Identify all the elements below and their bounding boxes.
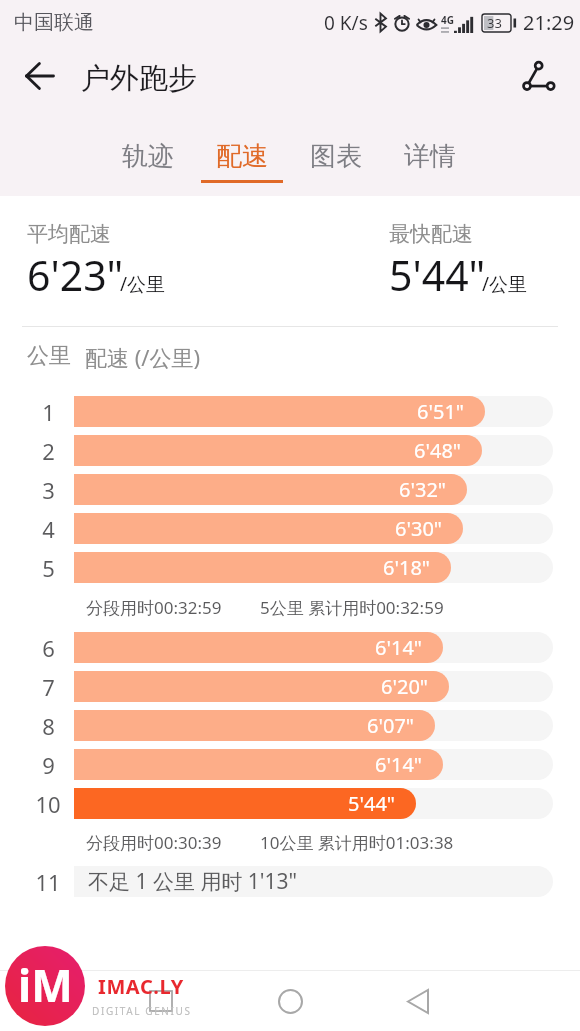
staticText: 6'48"	[414, 437, 461, 464]
button[interactable]: Recent apps	[129, 971, 193, 1031]
staticText: 最快配速	[389, 221, 473, 247]
staticText: 2	[42, 436, 55, 466]
staticText: 5'44"	[389, 247, 486, 303]
staticText: 6'32"	[399, 476, 446, 503]
button[interactable]: 4	[0, 509, 580, 548]
staticText: 3	[42, 475, 55, 505]
staticText: 配速 (/公里)	[85, 342, 201, 372]
staticText: 6'30"	[395, 515, 442, 542]
staticText: 6'14"	[375, 634, 422, 661]
staticText: 平均配速	[27, 221, 111, 247]
staticText: 5'44"	[348, 790, 395, 817]
button[interactable]: 1	[0, 392, 580, 431]
staticText: 4	[42, 514, 55, 544]
staticText: 10公里 累计用时01:03:38	[260, 831, 454, 854]
staticText: 5公里 累计用时00:32:59	[260, 596, 444, 619]
button[interactable]: 9	[0, 745, 580, 784]
staticText: 6'51"	[417, 398, 464, 425]
staticText: DIGITAL GENIUS	[92, 1004, 192, 1018]
button[interactable]: 配速	[195, 107, 289, 183]
staticText: /公里	[482, 271, 528, 297]
staticText: 6'18"	[383, 554, 430, 581]
staticText: 轨迹	[122, 140, 174, 173]
staticText: 33	[487, 14, 502, 32]
staticText: 配速	[216, 140, 268, 173]
staticText: 8	[42, 711, 55, 741]
staticText: 0 K/s	[324, 10, 368, 36]
staticText: 6'07"	[367, 712, 414, 739]
button[interactable]: 图表	[289, 107, 383, 180]
staticText: 户外跑步	[81, 60, 197, 97]
button[interactable]: Home	[258, 971, 322, 1031]
button[interactable]: 2	[0, 431, 580, 470]
staticText: 不足 1 公里 用时 1'13"	[88, 867, 298, 896]
button[interactable]: 10	[0, 784, 580, 823]
staticText: 5	[42, 553, 55, 583]
button[interactable]: 7	[0, 667, 580, 706]
staticText: 图表	[310, 140, 362, 173]
button[interactable]: 5	[0, 548, 580, 587]
staticText: 6'23"	[27, 247, 124, 303]
staticText: iM	[18, 955, 73, 1015]
staticText: 10	[35, 789, 61, 819]
button[interactable]: 6	[0, 628, 580, 667]
staticText: 1	[42, 397, 55, 427]
staticText: 中国联通	[14, 10, 94, 35]
button[interactable]: 轨迹	[101, 107, 195, 180]
staticText: 6	[42, 633, 55, 663]
button[interactable]: 3	[0, 470, 580, 509]
staticText: /公里	[120, 271, 166, 297]
button[interactable]: Share	[513, 50, 565, 102]
staticText: 11	[35, 867, 61, 897]
staticText: 21:29	[523, 9, 575, 36]
staticText: 6'20"	[381, 673, 428, 700]
staticText: 7	[42, 672, 55, 702]
staticText: 详情	[404, 140, 456, 173]
staticText: 4G	[441, 13, 454, 27]
button[interactable]: 详情	[383, 107, 477, 180]
staticText: IMAC.LY	[98, 973, 184, 1000]
button[interactable]: 8	[0, 706, 580, 745]
button[interactable]: Back	[15, 51, 65, 101]
staticText: 9	[42, 750, 55, 780]
button[interactable]: 11	[0, 862, 580, 901]
staticText: 分段用时00:32:59	[86, 596, 222, 619]
staticText: 6'14"	[375, 751, 422, 778]
staticText: 公里	[27, 342, 71, 370]
button[interactable]: Back	[386, 971, 450, 1031]
staticText: 分段用时00:30:39	[86, 831, 222, 854]
